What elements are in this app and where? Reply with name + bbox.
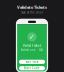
button[interactable]: Enter Code: [19, 66, 45, 70]
staticText: ✓: [29, 33, 35, 41]
staticText: Scan Next: [25, 60, 38, 64]
staticText: Validate Tickets: [17, 4, 47, 10]
staticText: Enter Code: [24, 66, 40, 70]
button[interactable]: Scan Next: [19, 60, 45, 64]
staticText: Scan at the door: [21, 11, 43, 14]
staticText: Valid Ticket: [23, 44, 41, 47]
staticText: Admit one · GA: [21, 48, 43, 52]
